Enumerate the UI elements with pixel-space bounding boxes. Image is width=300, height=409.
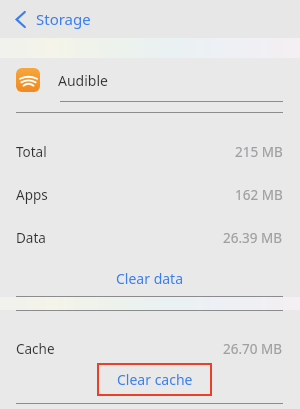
staticText: 162 MB	[235, 186, 283, 204]
button[interactable]: Back to Storage	[16, 3, 101, 35]
button[interactable]: Clear cache	[97, 363, 212, 396]
staticText: Storage	[36, 9, 91, 29]
button[interactable]: Audible	[0, 58, 300, 102]
staticText: 215 MB	[235, 143, 283, 161]
button[interactable]: Data	[0, 217, 300, 259]
staticText: Data	[16, 229, 46, 247]
staticText: Total	[16, 143, 47, 161]
staticText: 26.70 MB	[223, 340, 283, 358]
staticText: Cache	[16, 340, 55, 358]
staticText: Clear data	[116, 269, 184, 288]
staticText: 26.39 MB	[223, 229, 283, 247]
staticText: Clear cache	[117, 370, 193, 389]
button[interactable]: Clear data	[0, 264, 300, 292]
button[interactable]: Apps	[0, 174, 300, 216]
staticText: Audible	[58, 71, 108, 90]
button[interactable]: Total	[0, 131, 300, 173]
staticText: Apps	[16, 186, 48, 204]
button[interactable]: Cache	[0, 328, 300, 370]
